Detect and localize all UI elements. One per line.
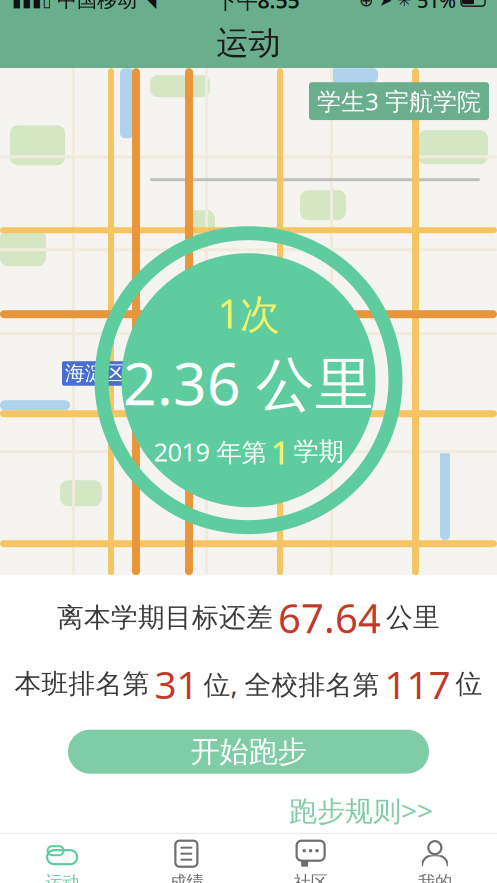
staticText: ➤ bbox=[379, 0, 392, 9]
staticText: 位 bbox=[455, 668, 482, 700]
staticText: 海淀区 bbox=[65, 361, 125, 386]
staticText: 运动 bbox=[216, 23, 280, 63]
staticText: 117 bbox=[384, 658, 450, 710]
button[interactable]: 社区 bbox=[248, 832, 373, 883]
staticText: 离本学期目标还差 bbox=[57, 601, 273, 634]
staticText: 中国移动 bbox=[57, 0, 137, 13]
staticText: 跑步规则>> bbox=[289, 792, 433, 829]
staticText: 67.64 bbox=[278, 591, 381, 644]
button[interactable]: 开始跑步 bbox=[68, 730, 429, 774]
staticText: 1次 bbox=[217, 286, 280, 340]
staticText: ◥ bbox=[142, 0, 156, 11]
button[interactable]: 跑步规则>> bbox=[283, 788, 439, 833]
staticText: 开始跑步 bbox=[190, 734, 306, 770]
staticText: 成绩 bbox=[169, 872, 203, 883]
staticText: 学生3 宇航学院 bbox=[317, 85, 481, 117]
staticText: 下午8:55 bbox=[215, 0, 299, 14]
staticText: 2019 年第 bbox=[153, 435, 266, 468]
button[interactable]: 成绩 bbox=[124, 832, 248, 883]
staticText: 社区 bbox=[294, 872, 328, 883]
staticText: 运动 bbox=[45, 872, 79, 883]
staticText: ▮▮▮▯ bbox=[12, 0, 52, 10]
staticText: ⊕ bbox=[359, 0, 374, 10]
button[interactable]: 我的 bbox=[373, 832, 497, 883]
staticText: 本班排名第 bbox=[14, 668, 149, 700]
staticText: ✳ bbox=[397, 0, 412, 10]
button[interactable]: 运动 bbox=[0, 832, 124, 883]
staticText: 位, 全校排名第 bbox=[203, 666, 379, 702]
staticText: 2.36 公里 bbox=[123, 344, 374, 421]
staticText: 1 bbox=[270, 430, 289, 474]
staticText: 公里 bbox=[386, 601, 440, 634]
staticText: 学期 bbox=[293, 436, 343, 467]
staticText: 31 bbox=[154, 658, 198, 710]
staticText: 51% bbox=[417, 0, 456, 14]
staticText: 我的 bbox=[418, 872, 452, 883]
